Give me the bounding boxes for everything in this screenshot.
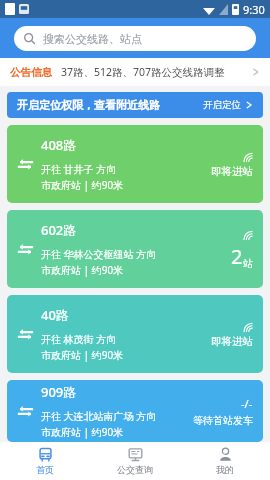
staticText: 搜索公交线路、站点 — [43, 32, 142, 46]
button[interactable]: 909路 — [7, 380, 263, 442]
staticText: 602路 — [41, 221, 77, 239]
button[interactable]: 公告信息 — [0, 58, 270, 86]
staticText: 开往 华林公交枢纽站 方向 — [41, 247, 157, 261]
staticText: 公交查询 — [117, 464, 153, 475]
staticText: 站 — [243, 257, 253, 270]
staticText: 市政府站 | 约90米 — [41, 178, 124, 192]
staticText: 公告信息 — [10, 66, 52, 79]
button[interactable]: 408路 — [7, 125, 263, 203]
staticText: 首页 — [36, 464, 54, 475]
staticText: -/- — [241, 396, 253, 411]
staticText: 9:30 — [243, 2, 265, 17]
button[interactable]: 602路 — [7, 210, 263, 288]
staticText: 开往 甘井子 方向 — [41, 162, 117, 176]
staticText: 2 — [231, 243, 243, 270]
staticText: 市政府站 | 约90米 — [41, 425, 124, 439]
staticText: 开往 林茂街 方向 — [41, 332, 117, 346]
staticText: 开启定位 — [203, 99, 241, 111]
staticText: 37路、512路、707路公交线路调整 — [61, 65, 225, 79]
button[interactable]: 40路 — [7, 295, 263, 373]
staticText: 40路 — [41, 306, 69, 324]
button[interactable]: 首页 — [0, 442, 90, 480]
button[interactable]: 搜索公交线路、站点 — [14, 26, 256, 51]
staticText: 我的 — [216, 464, 234, 475]
button[interactable]: 我的 — [180, 442, 270, 480]
staticText: 即将进站 — [211, 165, 253, 178]
staticText: 408路 — [41, 136, 77, 154]
staticText: 市政府站 | 约90米 — [41, 263, 124, 277]
button[interactable]: 开启定位权限，查看附近线路 — [7, 92, 263, 118]
staticText: 开启定位权限，查看附近线路 — [17, 98, 160, 112]
staticText: 开往 大连北站南广场 方向 — [41, 409, 157, 423]
button[interactable]: 公交查询 — [90, 442, 180, 480]
staticText: 等待首站发车 — [193, 414, 253, 427]
staticText: 909路 — [41, 383, 77, 401]
staticText: 市政府站 | 约90米 — [41, 348, 124, 362]
staticText: 即将进站 — [211, 335, 253, 348]
